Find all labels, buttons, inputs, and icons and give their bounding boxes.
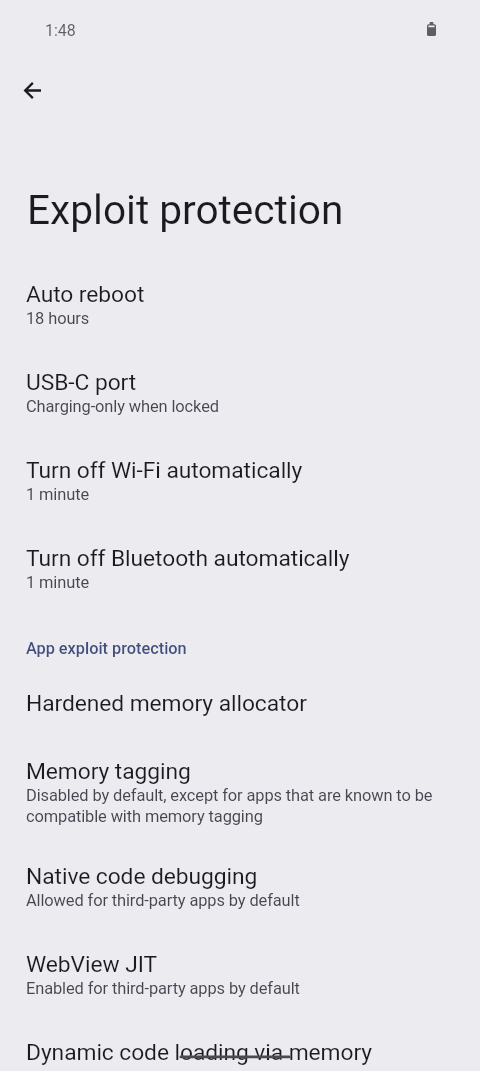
button[interactable]: Native code debugging <box>0 863 480 951</box>
button[interactable]: Hardened memory allocator <box>0 690 480 758</box>
button[interactable]: Auto reboot <box>0 281 480 369</box>
staticText: USB-C port <box>26 369 137 395</box>
button[interactable]: USB-C port <box>0 369 480 457</box>
button[interactable]: Memory tagging <box>0 758 480 863</box>
staticText: 18 hours <box>26 307 90 328</box>
button[interactable]: Dynamic code loading via memory <box>0 1039 480 1071</box>
staticText: Charging-only when locked <box>26 395 219 416</box>
staticText: App exploit protection <box>26 638 187 658</box>
staticText: 1 minute <box>26 483 90 504</box>
staticText: Allowed for third-party apps by default <box>26 889 300 910</box>
staticText: Memory tagging <box>26 758 191 784</box>
staticText: Turn off Wi-Fi automatically <box>26 457 303 483</box>
button[interactable]: WebView JIT <box>0 951 480 1039</box>
staticText: 1:48 <box>45 21 76 40</box>
button[interactable]: Back <box>10 68 54 112</box>
staticText: Auto reboot <box>26 281 145 307</box>
staticText: Hardened memory allocator <box>26 690 307 716</box>
staticText: Native code debugging <box>26 863 258 889</box>
staticText: Exploit protection <box>27 186 344 234</box>
button[interactable]: Turn off Wi-Fi automatically <box>0 457 480 545</box>
button[interactable]: Turn off Bluetooth automatically <box>0 545 480 633</box>
staticText: Dynamic code loading via memory <box>26 1039 373 1065</box>
staticText: Disabled by default, except for apps tha… <box>26 784 456 826</box>
staticText: Enabled for third-party apps by default <box>26 977 300 998</box>
staticText: Turn off Bluetooth automatically <box>26 545 350 571</box>
staticText: 1 minute <box>26 571 90 592</box>
staticText: WebView JIT <box>26 951 157 977</box>
